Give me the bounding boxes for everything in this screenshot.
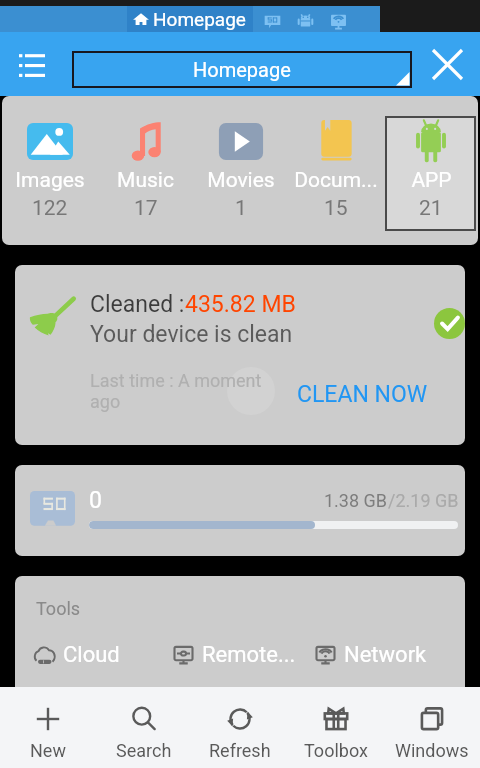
- staticText: Network: [344, 642, 427, 668]
- button[interactable]: Docum...: [290, 116, 381, 231]
- staticText: 122: [32, 196, 68, 221]
- staticText: Your device is clean: [90, 321, 293, 348]
- staticText: Cleaned :: [90, 291, 185, 318]
- button[interactable]: APP: [385, 116, 476, 231]
- staticText: Tools: [36, 598, 81, 619]
- button[interactable]: Music: [100, 116, 191, 231]
- staticText: Toolbox: [304, 740, 368, 761]
- button[interactable]: SD card: [261, 10, 283, 32]
- button[interactable]: Homepage: [127, 6, 253, 32]
- staticText: Last time : A moment ago: [90, 370, 276, 412]
- staticText: APP: [411, 168, 452, 193]
- button[interactable]: New: [0, 687, 96, 768]
- staticText: New: [30, 740, 66, 761]
- button[interactable]: 0: [15, 465, 465, 556]
- button[interactable]: CLEAN NOW: [297, 381, 428, 408]
- staticText: CLEAN NOW: [297, 381, 428, 408]
- button[interactable]: Network: [327, 10, 349, 32]
- staticText: /2.19 GB: [388, 490, 459, 511]
- staticText: 21: [419, 196, 443, 221]
- staticText: Movies: [207, 168, 275, 193]
- button[interactable]: Refresh: [192, 687, 288, 768]
- staticText: 15: [324, 196, 348, 221]
- staticText: Homepage: [193, 58, 291, 81]
- button[interactable]: Images: [4, 116, 96, 231]
- button[interactable]: Close: [423, 40, 471, 88]
- staticText: Homepage: [153, 8, 246, 30]
- staticText: Docum...: [294, 168, 378, 193]
- staticText: 0: [89, 487, 102, 514]
- staticText: Music: [117, 168, 174, 193]
- button[interactable]: Homepage: [72, 51, 412, 88]
- staticText: Refresh: [209, 740, 271, 761]
- staticText: Images: [15, 168, 85, 193]
- button[interactable]: Remote...: [171, 642, 296, 668]
- staticText: 435.82 MB: [185, 291, 296, 318]
- staticText: Search: [116, 740, 172, 761]
- staticText: Cloud: [63, 642, 120, 668]
- button[interactable]: Cleaned :: [15, 265, 465, 445]
- staticText: 1.38 GB: [324, 490, 388, 511]
- staticText: Remote...: [202, 642, 296, 668]
- staticText: 17: [134, 196, 158, 221]
- button[interactable]: Menu: [6, 38, 58, 90]
- button[interactable]: Device: [294, 10, 316, 32]
- button[interactable]: Toolbox: [288, 687, 384, 768]
- button[interactable]: Movies: [195, 116, 286, 231]
- staticText: 1: [235, 196, 247, 221]
- button[interactable]: Network: [313, 642, 427, 668]
- button[interactable]: Search: [96, 687, 192, 768]
- staticText: Windows: [395, 740, 469, 761]
- button[interactable]: Cloud: [32, 642, 120, 668]
- button[interactable]: Windows: [384, 687, 480, 768]
